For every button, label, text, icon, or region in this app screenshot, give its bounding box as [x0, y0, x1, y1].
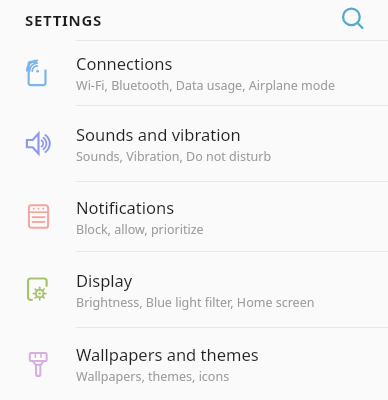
staticText: Wallpapers and themes [76, 343, 259, 365]
button[interactable]: Sounds and vibration [0, 106, 388, 181]
staticText: Block, allow, prioritize [76, 221, 204, 238]
button[interactable]: Display [0, 252, 388, 327]
staticText: Wallpapers, themes, icons [76, 368, 230, 385]
staticText: Sounds and vibration [76, 123, 241, 145]
staticText: Wi-Fi, Bluetooth, Data usage, Airplane m… [76, 77, 336, 94]
staticText: SETTINGS [25, 10, 103, 30]
button[interactable]: Wallpapers and themes [0, 328, 388, 400]
button[interactable]: Search [338, 4, 370, 36]
staticText: Brightness, Blue light filter, Home scre… [76, 294, 315, 311]
staticText: Display [76, 269, 133, 291]
staticText: Notifications [76, 196, 175, 218]
staticText: Sounds, Vibration, Do not disturb [76, 148, 272, 165]
button[interactable]: Notifications [0, 182, 388, 251]
staticText: Connections [76, 52, 173, 74]
button[interactable]: Connections [0, 41, 388, 105]
